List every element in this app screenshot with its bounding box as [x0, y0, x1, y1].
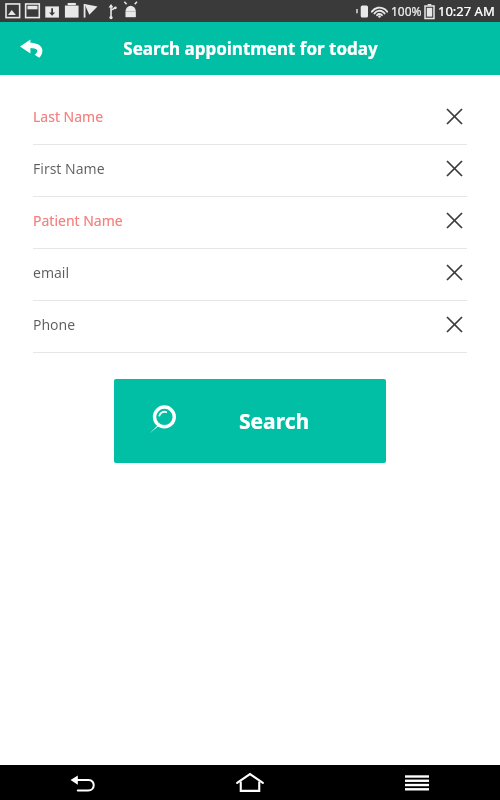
staticText: Patient Name [33, 211, 123, 230]
button[interactable]: Search [114, 379, 386, 463]
button[interactable]: Recent apps [333, 765, 500, 800]
button[interactable]: Back [0, 765, 166, 800]
button[interactable]: Phone [33, 301, 467, 353]
staticText: 100% [391, 3, 422, 19]
button[interactable]: Clear Phone [441, 311, 467, 337]
staticText: Search [239, 407, 310, 436]
button[interactable]: Back [8, 25, 56, 73]
staticText: Phone [33, 315, 76, 334]
staticText: Last Name [33, 107, 104, 126]
button[interactable]: Home [166, 765, 333, 800]
staticText: email [33, 263, 70, 282]
button[interactable]: Patient Name [33, 197, 467, 249]
button[interactable]: Last Name [33, 93, 467, 145]
staticText: 10:27 AM [438, 2, 495, 20]
staticText: First Name [33, 159, 105, 178]
button[interactable]: email [33, 249, 467, 301]
button[interactable]: Clear Last Name [441, 103, 467, 129]
button[interactable]: Clear email [441, 259, 467, 285]
staticText: Search appointment for today [123, 37, 378, 60]
button[interactable]: Clear Patient Name [441, 207, 467, 233]
button[interactable]: First Name [33, 145, 467, 197]
button[interactable]: Clear First Name [441, 155, 467, 181]
